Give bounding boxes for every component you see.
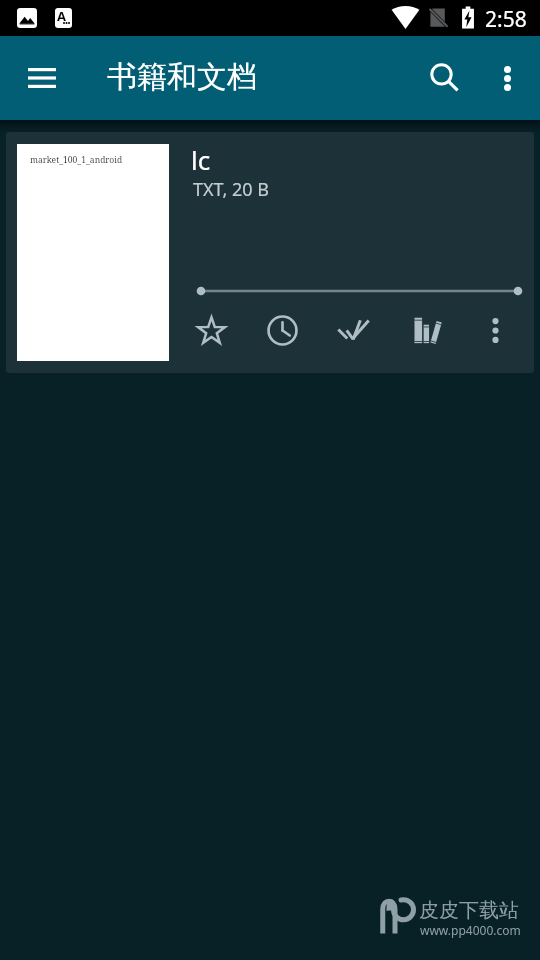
button[interactable]: Mark as read [329, 305, 377, 353]
staticText: TXT, 20 B [193, 177, 269, 202]
button[interactable]: Search [419, 52, 471, 104]
staticText: 2:58 [485, 5, 527, 34]
staticText: 皮皮下载站 [419, 898, 519, 923]
button[interactable]: Navigation menu [14, 50, 70, 106]
staticText: lc [191, 142, 211, 177]
button[interactable]: More actions [471, 306, 519, 354]
staticText: market_100_1_android [30, 154, 123, 166]
button[interactable]: Favorite [187, 306, 235, 354]
staticText: www.pp4000.com [420, 922, 521, 938]
button[interactable]: Reading history [258, 306, 306, 354]
staticText: A [57, 8, 66, 25]
button[interactable]: More options [481, 52, 533, 104]
staticText: 书籍和文档 [107, 58, 257, 96]
button[interactable]: Add to library [401, 305, 449, 353]
button[interactable]: market_100_1_android [6, 132, 534, 373]
